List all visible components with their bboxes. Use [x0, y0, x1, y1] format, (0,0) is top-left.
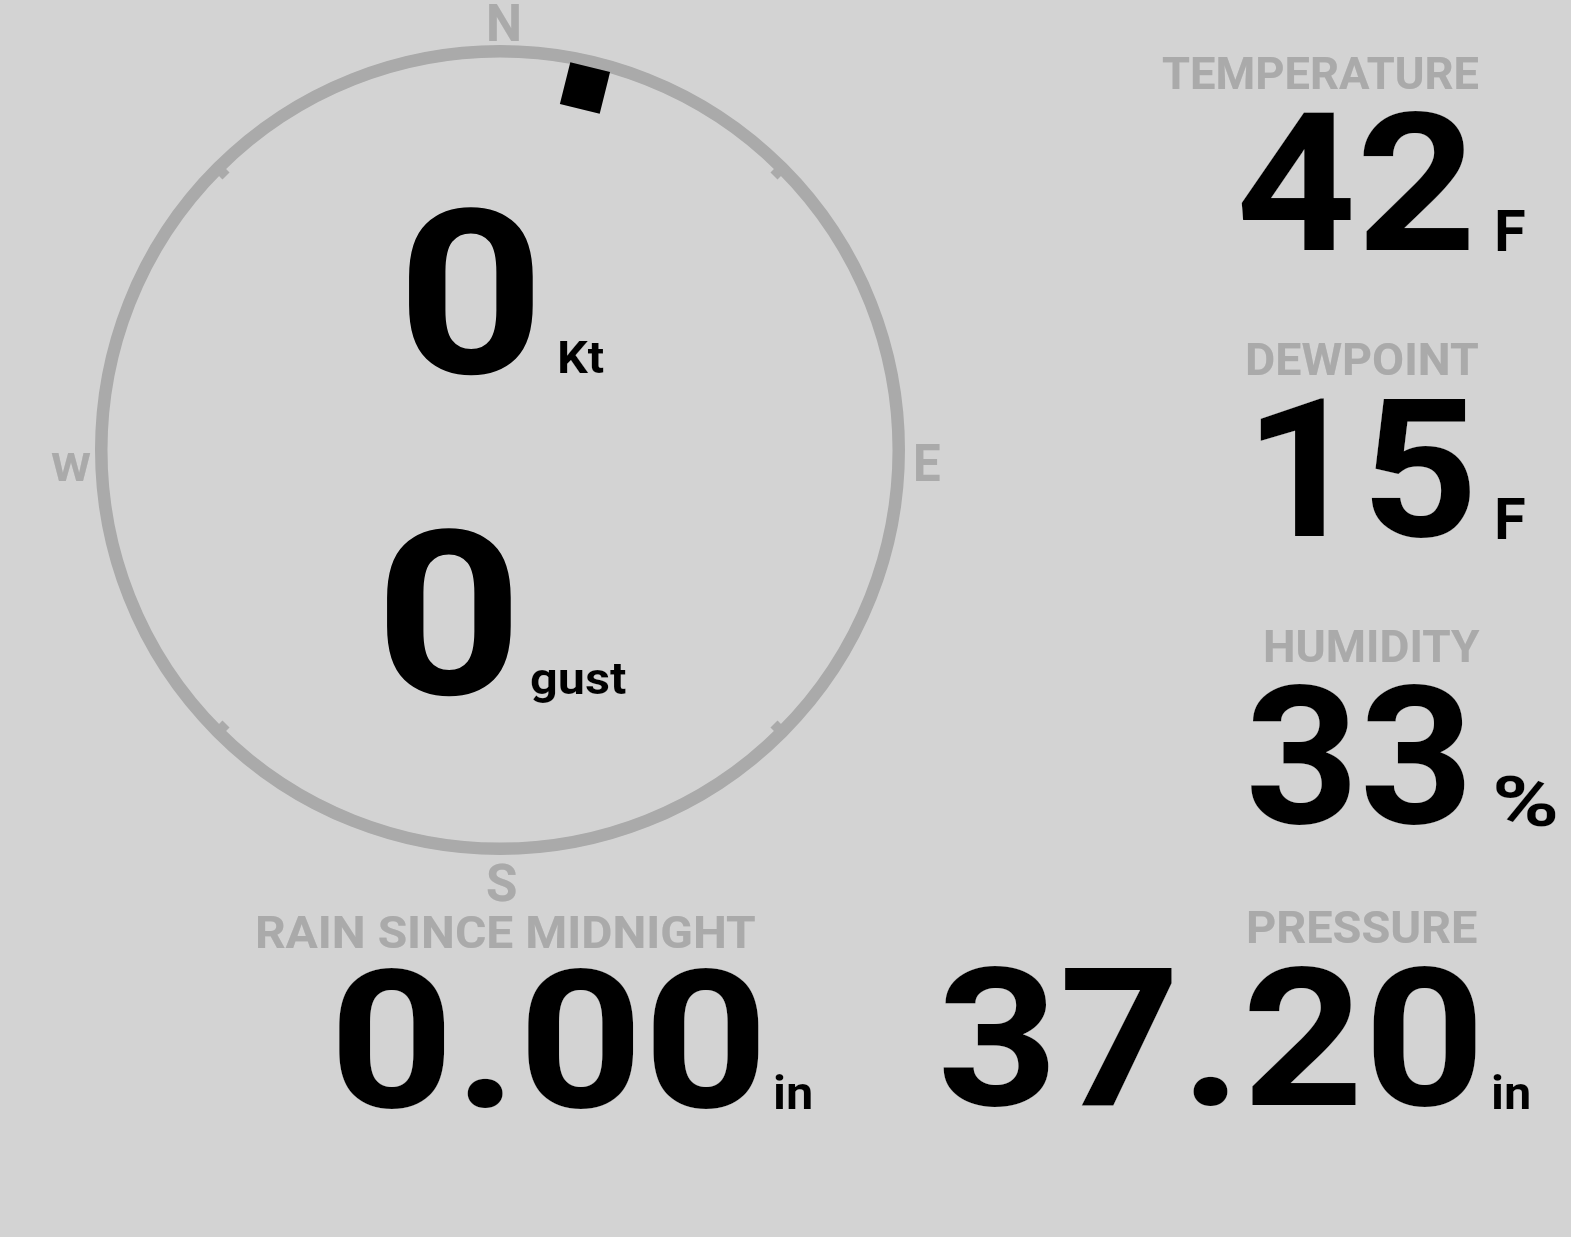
staticText: 0.00	[329, 928, 769, 1154]
staticText: PRESSURE	[1246, 901, 1478, 954]
staticText: 0	[375, 481, 523, 751]
staticText: gust	[530, 652, 627, 705]
staticText: N	[486, 0, 523, 54]
staticText: F	[1494, 197, 1526, 265]
staticText: 0	[397, 160, 545, 430]
staticText: 42	[1236, 71, 1477, 297]
staticText: %	[1492, 761, 1560, 843]
staticText: DEWPOINT	[1245, 333, 1479, 386]
staticText: in	[1491, 1065, 1532, 1120]
staticText: 15	[1244, 357, 1479, 583]
staticText: in	[773, 1065, 814, 1120]
staticText: Kt	[557, 331, 604, 384]
button[interactable]: Rain since midnight 0.00 inches	[240, 900, 830, 1120]
staticText: 33	[1245, 644, 1474, 870]
staticText: E	[913, 434, 941, 494]
staticText: W	[51, 446, 92, 491]
staticText: TEMPERATURE	[1162, 47, 1479, 100]
button[interactable]: Pressure 37.20 inches	[900, 895, 1500, 1120]
button[interactable]: Temperature 42 degrees Fahrenheit	[1100, 40, 1560, 270]
staticText: F	[1494, 485, 1526, 553]
staticText: 37.20	[937, 926, 1486, 1152]
button[interactable]: Humidity 33 percent	[1100, 610, 1560, 840]
staticText: RAIN SINCE MIDNIGHT	[255, 906, 757, 959]
staticText: HUMIDITY	[1263, 620, 1480, 673]
button[interactable]: Dewpoint 15 degrees Fahrenheit	[1100, 325, 1560, 555]
staticText: S	[486, 854, 518, 914]
button[interactable]: Wind direction compass, 0 knots, gusting…	[90, 40, 910, 860]
